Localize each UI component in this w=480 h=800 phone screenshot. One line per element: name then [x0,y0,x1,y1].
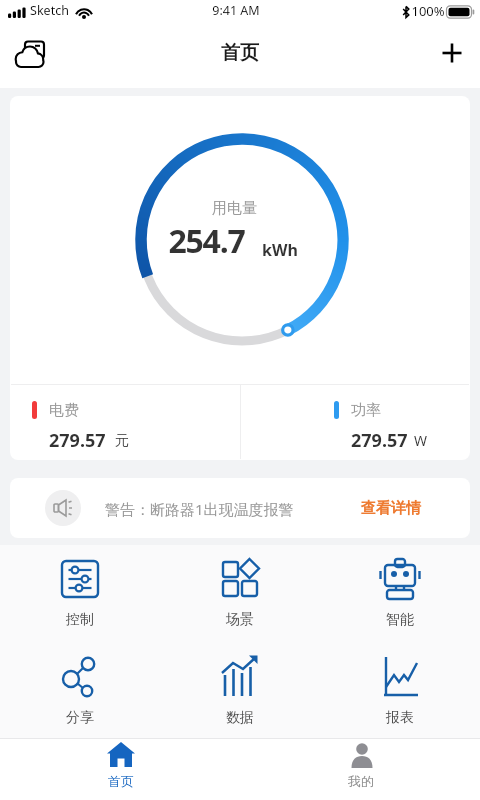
button[interactable] [160,645,320,733]
staticText: 首页 [221,41,259,65]
staticText: 数据 [226,709,254,727]
staticText: 9:41 AM [212,2,260,19]
button[interactable] [320,547,480,635]
staticText: W [414,431,428,450]
button[interactable] [320,645,480,733]
staticText: 报表 [386,709,414,727]
staticText: 分享 [66,709,94,727]
button[interactable]: 警告：断路器1出现温度报警 [10,478,470,538]
staticText: 用电量 [212,199,257,218]
staticText: 254.7 [168,219,245,263]
button[interactable] [11,385,240,459]
staticText: 警告：断路器1出现温度报警 [105,499,294,519]
staticText: 元 [115,432,129,450]
staticText: 控制 [66,611,94,629]
staticText: kWh [262,239,298,261]
button[interactable] [0,547,160,635]
button[interactable] [240,739,480,800]
staticText: 功率 [351,401,381,420]
button[interactable] [160,547,320,635]
button[interactable] [0,739,240,800]
staticText: 279.57 [351,428,408,453]
staticText: 场景 [226,611,254,629]
button[interactable]: 查看详情 [361,499,421,518]
button[interactable] [14,39,48,71]
staticText: 279.57 [49,428,106,453]
button[interactable] [0,645,160,733]
staticText: 100% [411,2,445,20]
staticText: Sketch [30,2,69,19]
staticText: 我的 [348,773,374,789]
staticText: 电费 [49,401,79,420]
button[interactable] [438,39,466,67]
staticText: 智能 [386,611,414,629]
button[interactable] [241,385,469,459]
staticText: 首页 [108,773,134,789]
